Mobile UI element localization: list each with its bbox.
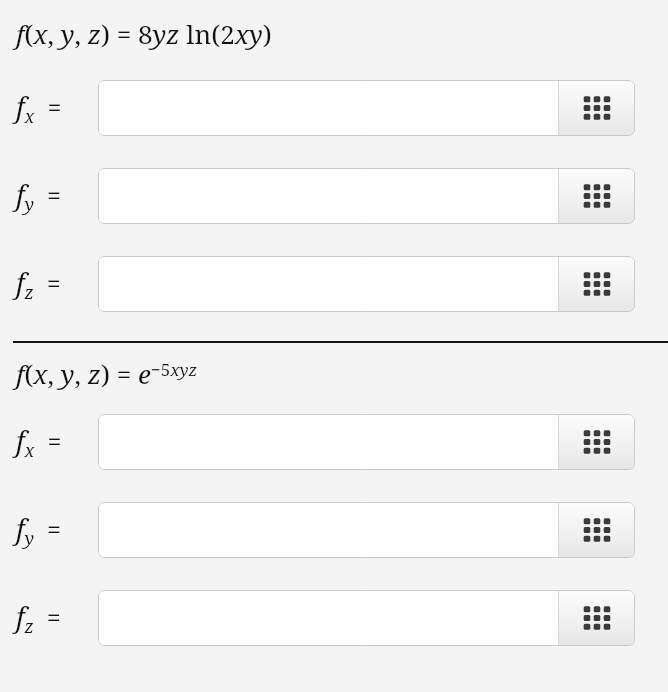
button[interactable] <box>98 168 558 224</box>
button[interactable]: Open keypad <box>559 256 635 312</box>
button[interactable]: Open keypad <box>559 502 635 558</box>
staticText: fy = <box>16 176 62 216</box>
staticText: f(x, y, z) = e−5xyz <box>16 356 198 391</box>
button[interactable]: Open keypad <box>559 80 635 136</box>
button[interactable] <box>98 590 558 646</box>
button[interactable] <box>98 256 558 312</box>
button[interactable] <box>98 80 558 136</box>
button[interactable]: Open keypad <box>559 168 635 224</box>
button[interactable] <box>98 502 558 558</box>
staticText: f(x, y, z) = 8yz ln(2xy) <box>16 16 272 51</box>
staticText: fz = <box>16 598 61 638</box>
staticText: fx = <box>16 422 62 462</box>
button[interactable]: Open keypad <box>559 590 635 646</box>
staticText: fz = <box>16 264 61 304</box>
button[interactable] <box>98 414 558 470</box>
staticText: fy = <box>16 510 62 550</box>
button[interactable]: Open keypad <box>559 414 635 470</box>
staticText: fx = <box>16 88 62 128</box>
